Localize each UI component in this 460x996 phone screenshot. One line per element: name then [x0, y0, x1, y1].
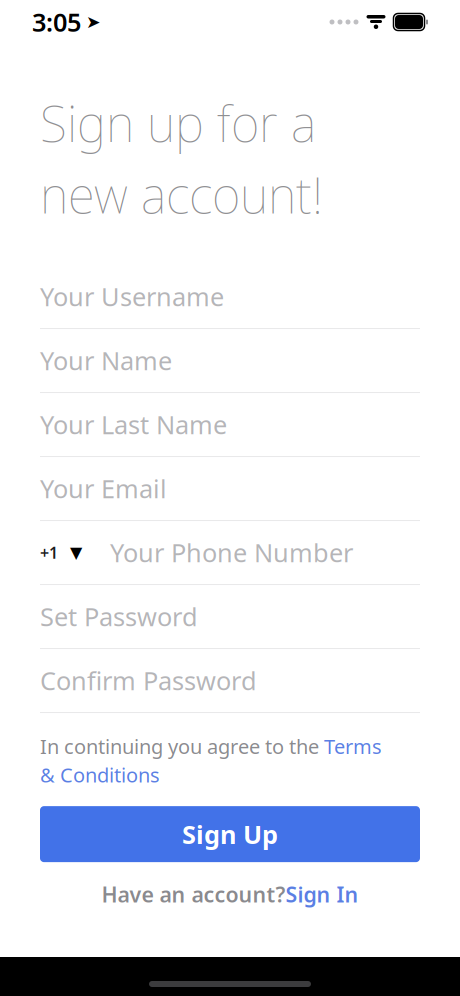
staticText: +1: [40, 542, 58, 563]
button[interactable]: & Conditions: [40, 762, 160, 788]
staticText: ➤: [86, 12, 101, 32]
staticText: Sign up for a: [40, 90, 316, 155]
staticText: Sign Up: [182, 817, 278, 851]
button[interactable]: +1: [40, 521, 110, 584]
button[interactable]: Terms: [324, 733, 382, 760]
button[interactable]: Sign In: [285, 880, 358, 908]
staticText: Have an account?: [101, 880, 285, 908]
staticText: Your Name: [40, 344, 172, 377]
staticText: In continuing you agree to the: [40, 733, 324, 760]
staticText: Your Username: [40, 280, 224, 313]
button[interactable]: Sign Up: [40, 806, 420, 862]
staticText: Your Phone Number: [110, 536, 353, 569]
staticText: Sign In: [285, 880, 358, 908]
staticText: Set Password: [40, 600, 198, 633]
staticText: ▼: [70, 543, 82, 562]
staticText: Your Last Name: [40, 408, 227, 441]
staticText: Confirm Password: [40, 664, 257, 697]
staticText: 3:05: [32, 5, 81, 39]
staticText: & Conditions: [40, 762, 160, 788]
staticText: new account!: [40, 161, 323, 227]
staticText: Your Email: [40, 472, 167, 505]
staticText: Terms: [324, 733, 382, 760]
